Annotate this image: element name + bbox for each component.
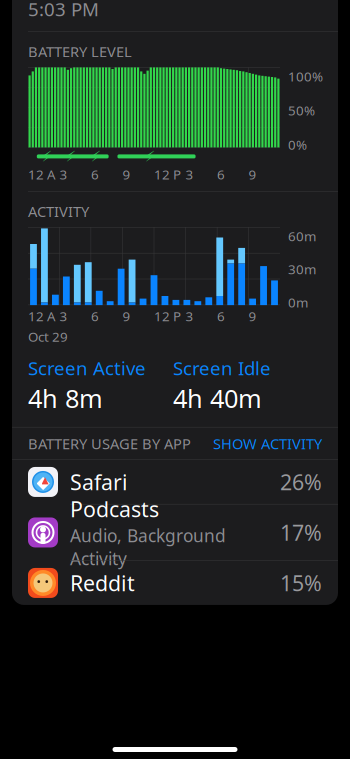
staticText: BATTERY USAGE BY APP (28, 434, 191, 453)
staticText: 100% (288, 67, 323, 85)
staticText: 4h 40m (173, 381, 262, 415)
staticText: 5:03 PM (28, 0, 99, 21)
staticText: 6 (217, 165, 225, 183)
staticText: ⚡︎ (91, 148, 101, 165)
staticText: 12 A (28, 307, 56, 325)
staticText: 50% (288, 102, 315, 119)
staticText: 0m (288, 293, 308, 311)
staticText: • • (37, 575, 49, 588)
staticText: 0% (288, 136, 307, 153)
button[interactable]: • • (12, 561, 338, 605)
button[interactable]: SHOW ACTIVITY (213, 434, 322, 453)
staticText: ⚡︎ (66, 148, 76, 165)
staticText: Safari (70, 468, 128, 496)
staticText: 3 (59, 307, 67, 325)
staticText: Screen Idle (173, 355, 271, 380)
staticText: 12 A (28, 165, 56, 183)
staticText: ⚡︎ (42, 148, 52, 165)
staticText: Screen Active (28, 355, 146, 380)
staticText: 6 (217, 307, 225, 325)
staticText: 3 (185, 165, 193, 183)
staticText: 12 P (154, 307, 181, 325)
staticText: 9 (122, 307, 130, 325)
staticText: 12 P (154, 165, 181, 183)
staticText: 26% (280, 468, 322, 496)
staticText: 30m (288, 260, 316, 278)
staticText: BATTERY LEVEL (28, 42, 132, 61)
staticText: 3 (59, 165, 67, 183)
staticText: 60m (288, 227, 316, 245)
staticText: Reddit (70, 569, 135, 597)
staticText: SHOW ACTIVITY (213, 434, 322, 453)
staticText: ◆ (36, 472, 49, 492)
staticText: 15% (280, 569, 322, 597)
staticText: Oct 29 (28, 328, 68, 345)
staticText: Podcasts (70, 495, 159, 523)
staticText: ⚡︎ (145, 148, 155, 165)
button[interactable]: Podcasts (12, 504, 338, 561)
staticText: 9 (122, 165, 130, 183)
staticText: 6 (91, 165, 99, 183)
staticText: 6 (91, 307, 99, 325)
staticText: 4h 8m (28, 381, 103, 415)
staticText: ▲ (41, 475, 48, 485)
button[interactable]: ◆ (12, 460, 338, 504)
staticText: 9 (248, 307, 256, 325)
staticText: ACTIVITY (28, 202, 89, 221)
staticText: 17% (280, 518, 322, 547)
staticText: 9 (248, 165, 256, 183)
staticText: 3 (185, 307, 193, 325)
staticText: Audio, Background Activity (70, 524, 226, 570)
